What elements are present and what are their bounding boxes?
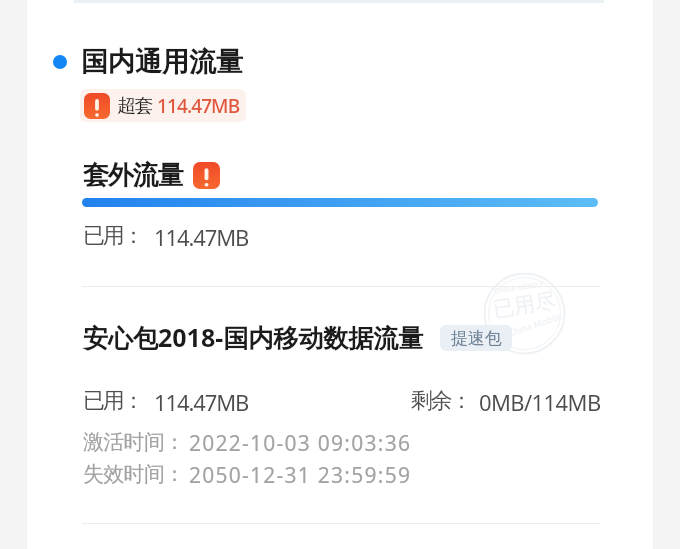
other: Warning [84, 93, 110, 119]
button[interactable]: 提速包 [440, 325, 512, 351]
staticText: 失效时间： [83, 461, 185, 487]
staticText: 国内通用流量 [81, 45, 243, 79]
staticText: 2022-10-03 09:03:36 [189, 429, 412, 458]
other: Warning [193, 162, 220, 189]
staticText: 激活时间： [83, 429, 185, 455]
staticText: 套外流量 [83, 159, 183, 192]
staticText: CHINA MOBILE [493, 280, 544, 296]
staticText: 已用： [83, 222, 143, 250]
staticText: 114.47MB [154, 387, 249, 417]
staticText: 已用尽 [491, 287, 558, 323]
button[interactable]: 国内通用流量 [53, 45, 243, 79]
staticText: 2050-12-31 23:59:59 [189, 461, 412, 490]
staticText: 0MB/114MB [479, 387, 601, 417]
staticText: 已用： [83, 387, 143, 415]
staticText: 超套 [117, 94, 153, 118]
staticText: China Mobile [506, 310, 563, 338]
staticText: 114.47MB [157, 93, 240, 119]
staticText: 剩余： [411, 387, 471, 415]
staticText: 提速包 [451, 328, 502, 349]
staticText: 114.47MB [154, 222, 249, 252]
button[interactable]: Warning [80, 89, 246, 122]
staticText: 安心包2018-国内移动数据流量 [83, 320, 424, 354]
